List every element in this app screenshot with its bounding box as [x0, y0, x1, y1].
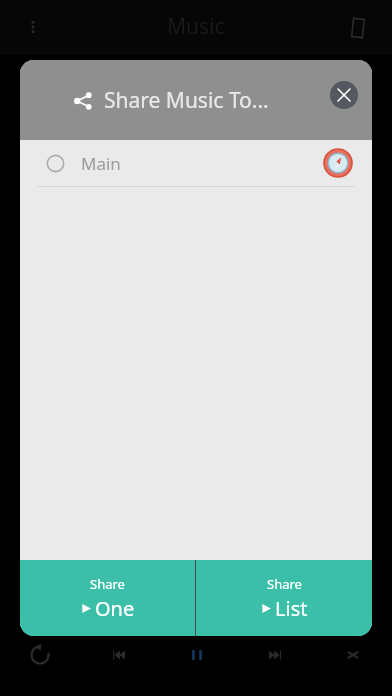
button[interactable]: Shuffle	[314, 638, 392, 672]
staticText: Share	[90, 575, 125, 593]
button[interactable]: Repeat	[0, 638, 79, 672]
button[interactable]: Main	[20, 140, 372, 186]
button[interactable]: Share	[20, 560, 195, 636]
button[interactable]: Share	[196, 560, 372, 636]
staticText: Share Music To...	[104, 86, 269, 115]
button[interactable]: Next	[236, 638, 314, 672]
staticText: Main	[81, 152, 121, 175]
button[interactable]: Close	[330, 81, 358, 109]
staticText: Share	[267, 575, 302, 593]
staticText: List	[275, 595, 308, 622]
button[interactable]: More options	[13, 7, 53, 47]
button[interactable]: Previous	[79, 638, 158, 672]
button[interactable]: Pause	[158, 638, 236, 672]
button[interactable]: Cast to device	[338, 8, 378, 48]
staticText: One	[95, 595, 135, 622]
staticText: Music	[167, 12, 225, 41]
